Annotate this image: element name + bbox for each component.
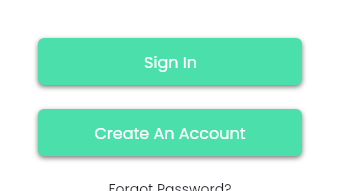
staticText: Sign In	[144, 51, 197, 73]
staticText: Create An Account	[94, 122, 246, 144]
staticText: Forgot Password?	[108, 179, 232, 191]
button[interactable]: Sign In	[38, 38, 302, 85]
button[interactable]: Forgot Password?	[108, 179, 232, 191]
button[interactable]: Create An Account	[38, 109, 302, 156]
